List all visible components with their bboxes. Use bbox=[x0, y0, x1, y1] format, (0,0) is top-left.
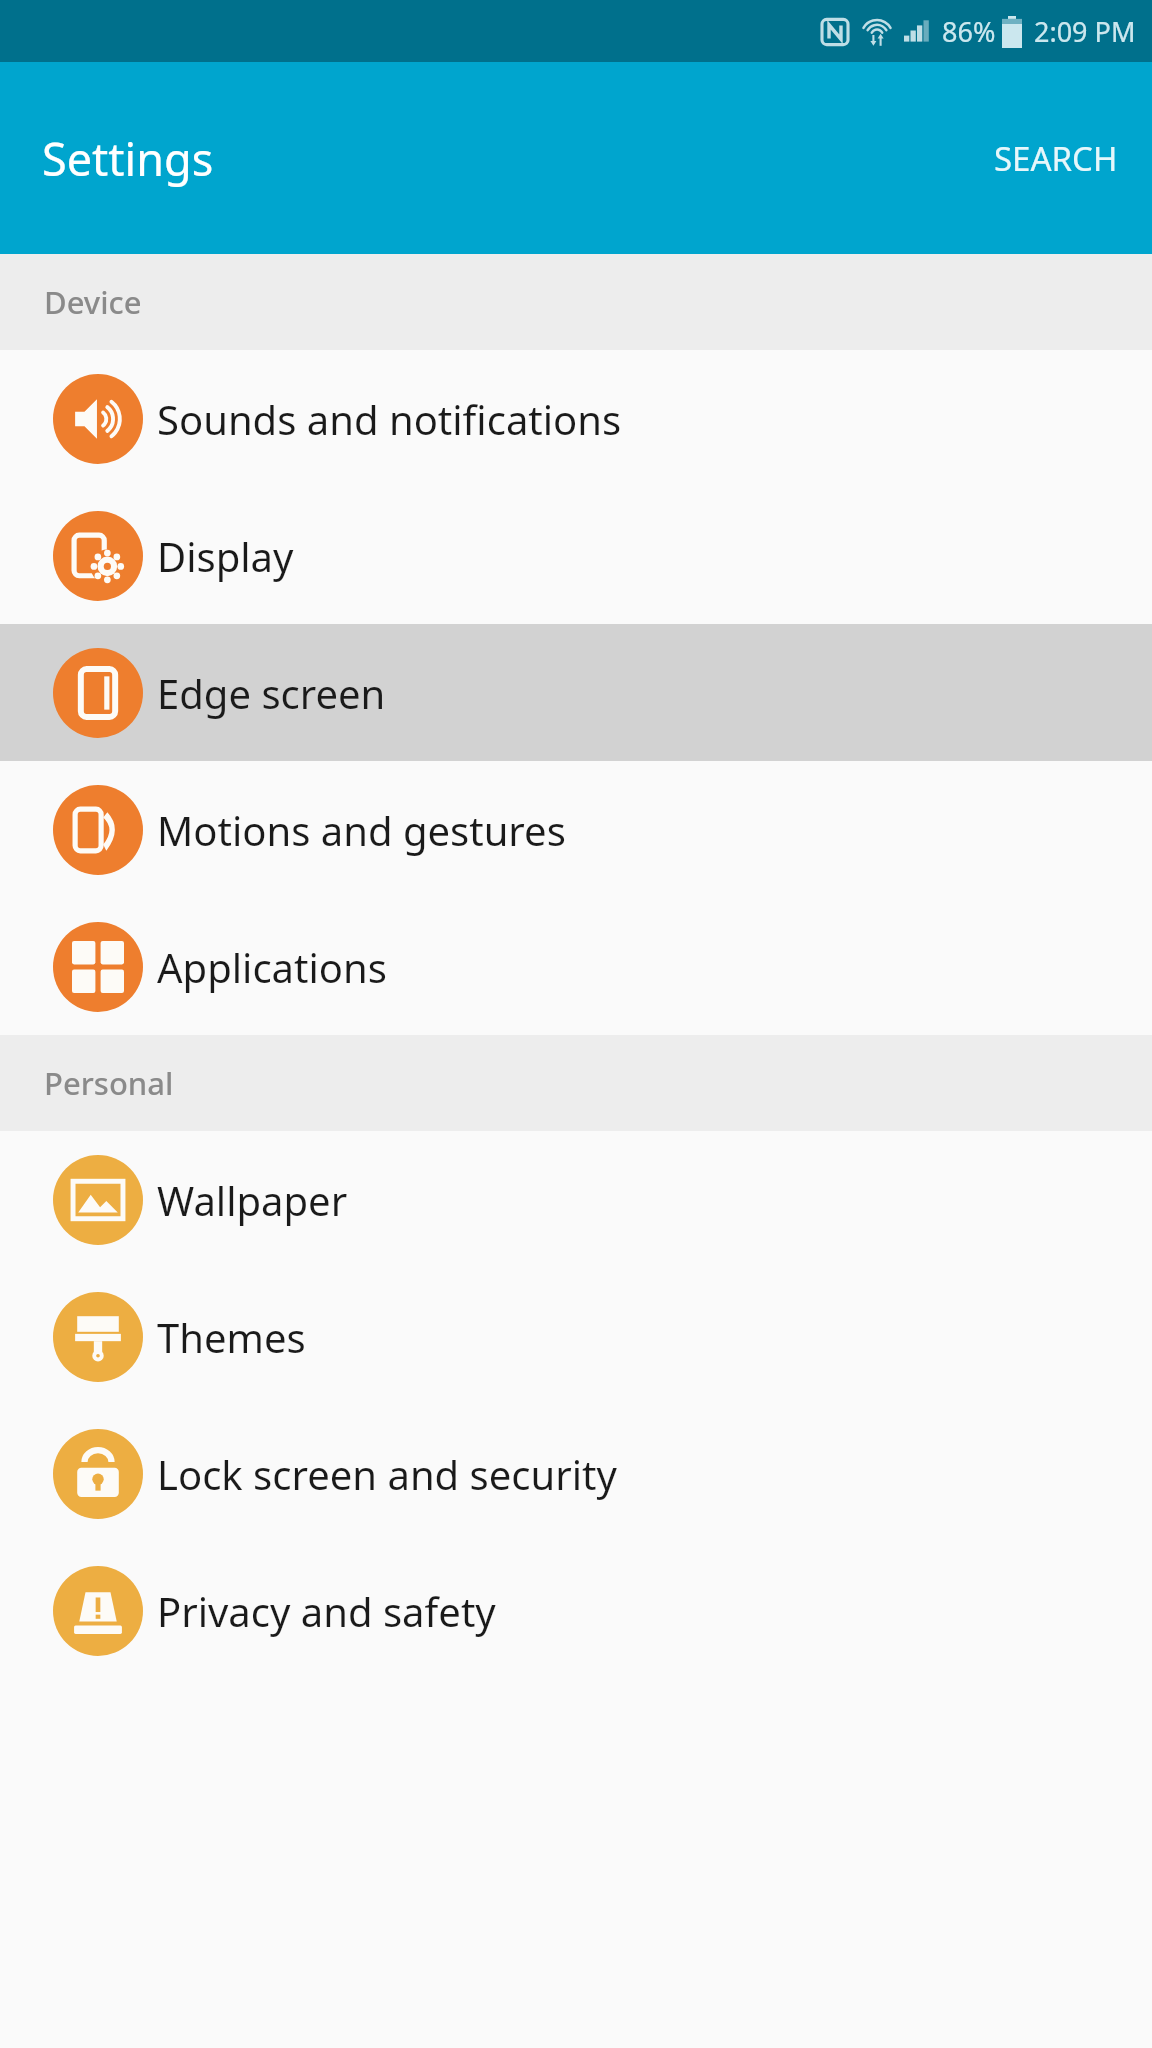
staticText: 2:09 PM bbox=[1034, 13, 1136, 50]
button[interactable]: Themes bbox=[0, 1268, 1152, 1405]
staticText: Themes bbox=[157, 1310, 306, 1364]
staticText: Applications bbox=[157, 940, 387, 994]
button[interactable]: Lock screen and security bbox=[0, 1405, 1152, 1542]
staticText: SEARCH bbox=[994, 136, 1118, 181]
staticText: Display bbox=[157, 529, 294, 583]
button[interactable]: Sounds and notifications bbox=[0, 350, 1152, 487]
button[interactable]: Privacy and safety bbox=[0, 1542, 1152, 1679]
staticText: Edge screen bbox=[157, 666, 386, 720]
button[interactable]: SEARCH bbox=[960, 114, 1152, 203]
staticText: Settings bbox=[42, 128, 214, 189]
staticText: Personal bbox=[44, 1062, 174, 1104]
staticText: Lock screen and security bbox=[157, 1447, 617, 1501]
staticText: Privacy and safety bbox=[157, 1584, 496, 1638]
staticText: Device bbox=[44, 281, 142, 323]
staticText: Wallpaper bbox=[157, 1173, 348, 1227]
button[interactable]: Applications bbox=[0, 898, 1152, 1035]
staticText: 86% bbox=[942, 13, 996, 50]
button[interactable]: Edge screen bbox=[0, 624, 1152, 761]
button[interactable]: Display bbox=[0, 487, 1152, 624]
staticText: Motions and gestures bbox=[157, 803, 566, 857]
staticText: Sounds and notifications bbox=[157, 392, 622, 446]
button[interactable]: Motions and gestures bbox=[0, 761, 1152, 898]
button[interactable]: Wallpaper bbox=[0, 1131, 1152, 1268]
